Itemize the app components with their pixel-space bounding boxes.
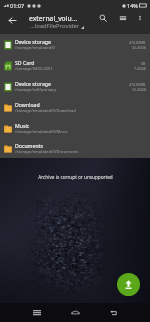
button[interactable]: Home xyxy=(61,305,90,320)
staticText: 32.45GB xyxy=(132,45,146,50)
staticText: 01:07 xyxy=(10,2,25,9)
button[interactable]: Device storage xyxy=(0,76,150,97)
staticText: 0B xyxy=(141,61,146,66)
staticText: /storage/self/primary xyxy=(15,87,57,93)
staticText: 14% xyxy=(127,2,138,9)
staticText: /storage/0403-0201 xyxy=(15,66,53,72)
button[interactable]: Search xyxy=(95,11,111,25)
button[interactable]: Back xyxy=(99,305,128,320)
staticText: /storage/emulated/0/Music xyxy=(15,129,68,135)
staticText: Archive is corrupt or unsupported xyxy=(38,174,113,180)
staticText: /storage/emulated/0/Download xyxy=(15,108,76,114)
button[interactable]: Music xyxy=(0,118,150,139)
staticText: Device storage xyxy=(15,38,51,45)
button[interactable]: View mode xyxy=(115,11,131,25)
button[interactable]: Upload xyxy=(117,273,140,296)
staticText: Download xyxy=(15,101,40,108)
staticText: SD Card xyxy=(15,59,35,66)
button[interactable]: More options xyxy=(132,11,147,25)
staticText: Documents xyxy=(15,142,43,149)
button[interactable]: SD Card xyxy=(0,55,150,76)
staticText: 474.82MB xyxy=(129,82,146,87)
staticText: 32.45GB xyxy=(132,87,146,92)
button[interactable]: Documents xyxy=(0,139,150,158)
staticText: external_volu… xyxy=(29,14,78,23)
button[interactable]: Back xyxy=(0,11,24,29)
button[interactable]: Download xyxy=(0,97,150,118)
staticText: Device storage xyxy=(15,80,51,87)
button[interactable]: Device storage xyxy=(0,34,150,55)
staticText: 474.82MB xyxy=(129,40,146,45)
staticText: Music xyxy=(15,122,30,129)
staticText: /storage/emulated/0/Documents xyxy=(15,149,79,155)
staticText: …loadFileProvider xyxy=(30,22,80,30)
staticText: 7.43GB xyxy=(134,66,146,71)
staticText: /storage/emulated/0 xyxy=(15,45,55,51)
button[interactable]: Recents xyxy=(22,305,51,320)
